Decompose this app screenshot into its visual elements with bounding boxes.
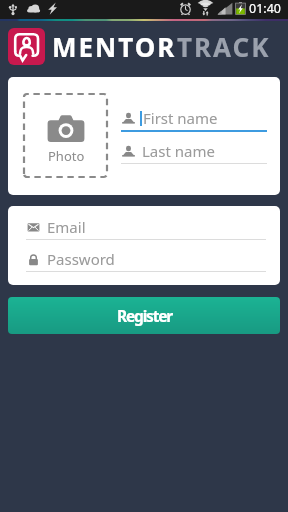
button[interactable]: Add photo xyxy=(24,94,107,177)
staticText: TRACK xyxy=(177,29,271,64)
staticText: MENTOR xyxy=(52,29,177,64)
staticText: Email xyxy=(47,217,86,237)
button[interactable]: Password xyxy=(26,249,266,272)
button[interactable]: Register xyxy=(8,297,280,334)
button[interactable]: MentorTrack logo xyxy=(8,28,45,65)
staticText: First name xyxy=(143,108,218,128)
button[interactable]: Last name xyxy=(121,141,267,164)
button[interactable]: Email xyxy=(26,217,266,240)
staticText: Password xyxy=(47,249,115,269)
staticText: Photo xyxy=(48,147,85,165)
staticText: 01:40 xyxy=(249,0,281,17)
button[interactable]: First name xyxy=(121,108,267,132)
staticText: Last name xyxy=(142,141,215,161)
staticText: Register xyxy=(117,305,172,326)
